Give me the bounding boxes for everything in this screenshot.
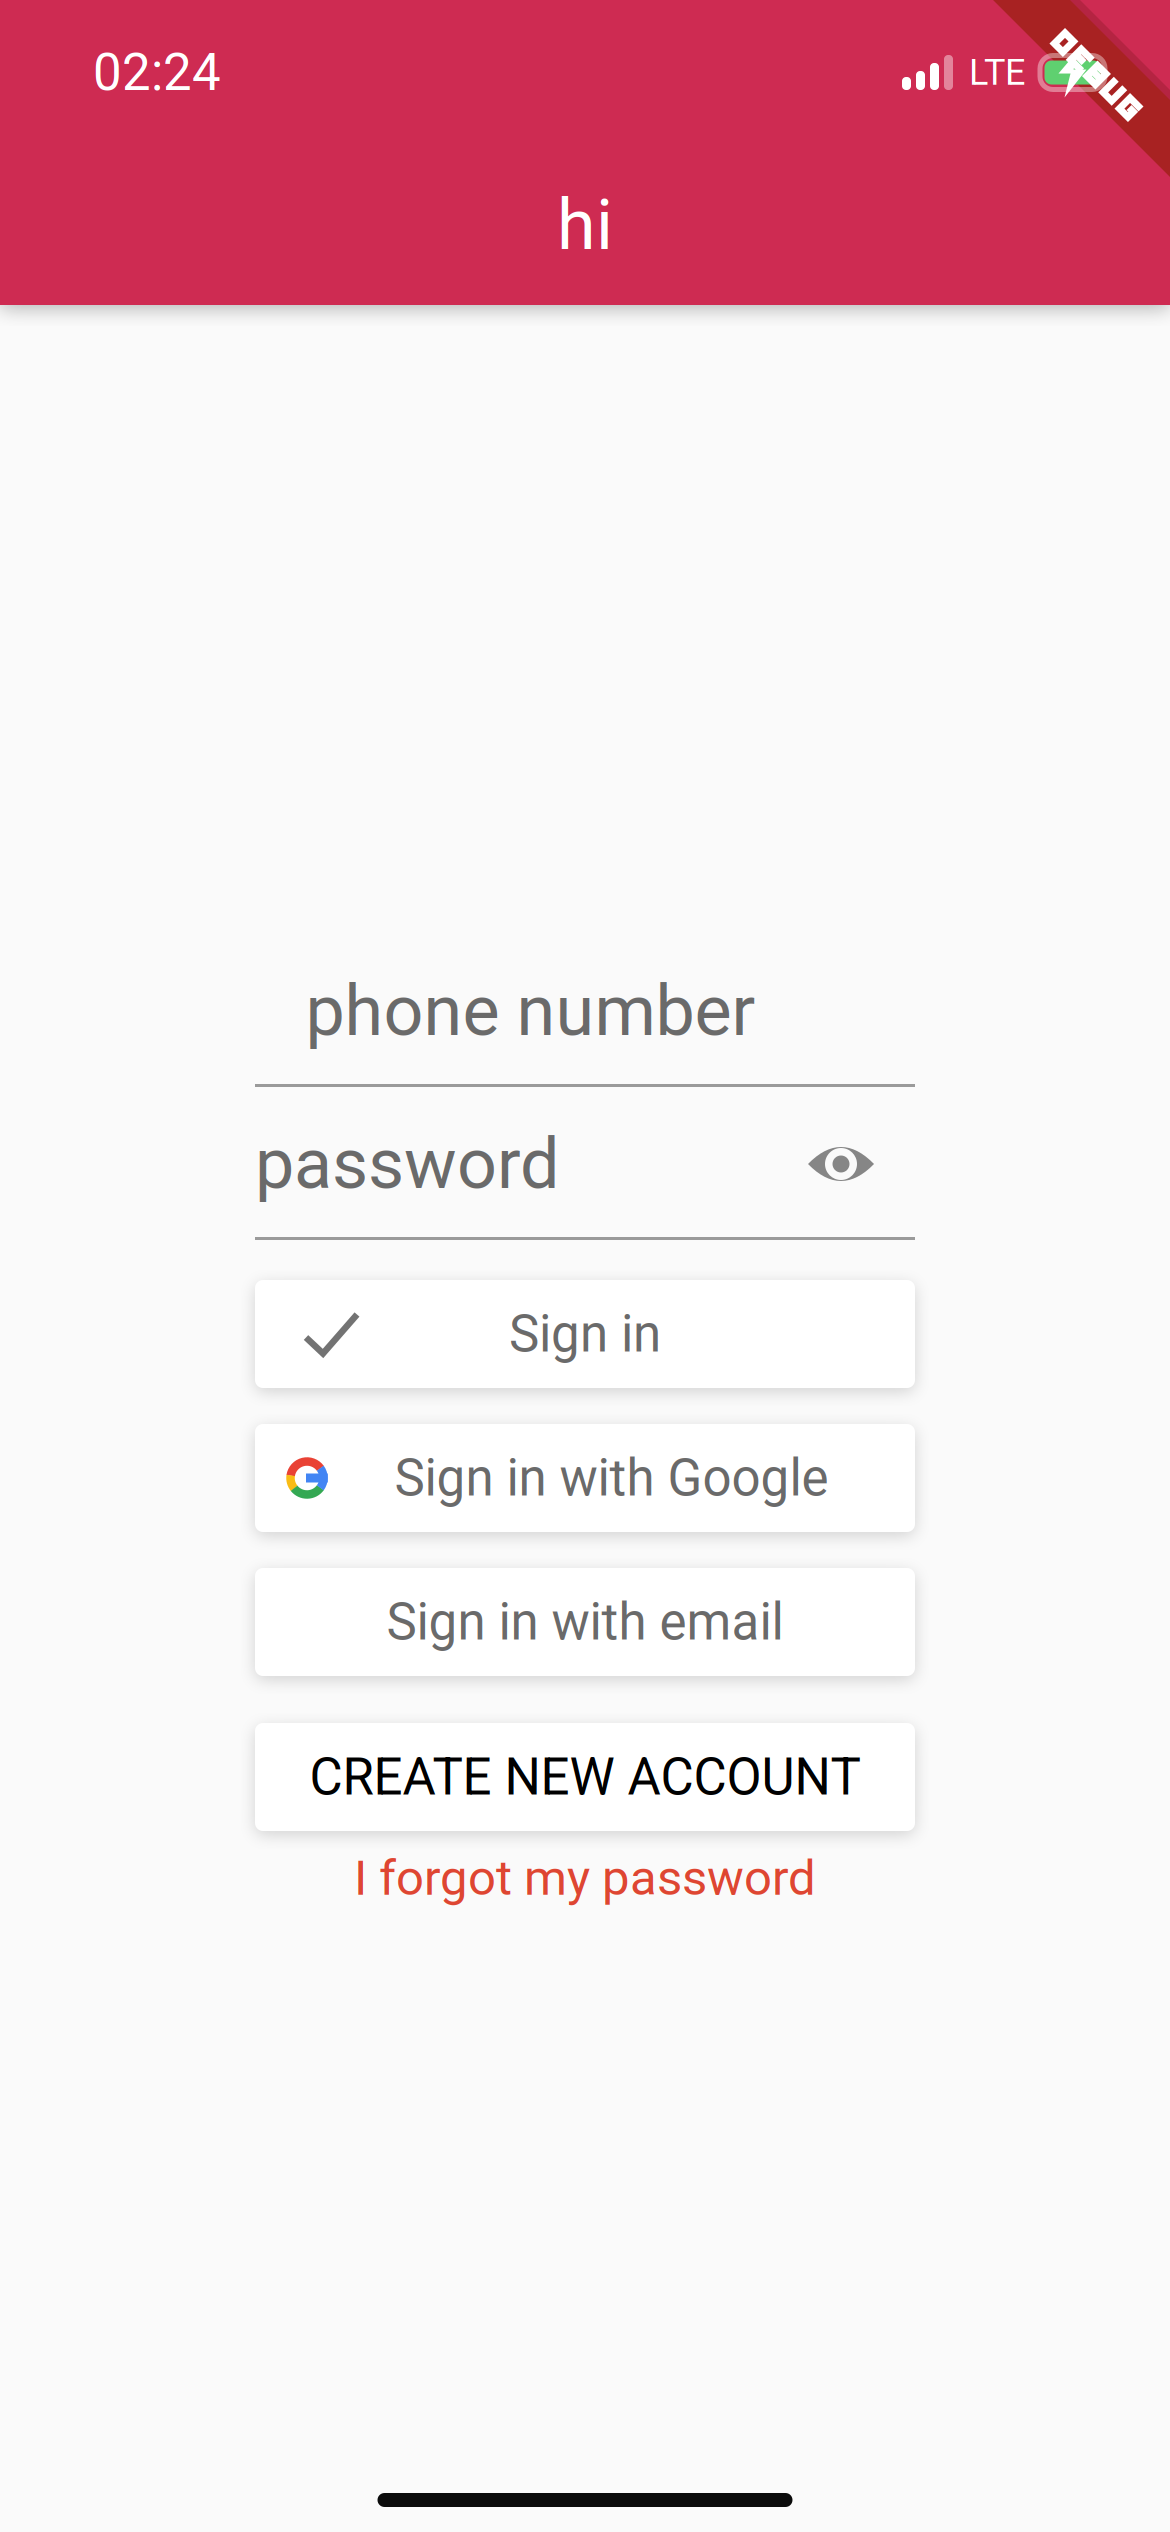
button[interactable]: Show password (806, 1136, 876, 1192)
staticText: Sign in with Google (394, 1448, 828, 1508)
button[interactable]: CREATE NEW ACCOUNT (255, 1723, 915, 1831)
button[interactable]: Sign in (255, 1280, 915, 1388)
staticText: phone number (305, 970, 755, 1052)
button[interactable]: Sign in with Google (255, 1424, 915, 1532)
button[interactable]: I forgot my password (255, 1831, 915, 1925)
staticText: Sign in with email (386, 1592, 783, 1652)
staticText: hi (557, 184, 613, 266)
staticText: I forgot my password (354, 1849, 816, 1907)
staticText: Sign in (509, 1304, 661, 1364)
staticText: 02:24 (93, 43, 221, 102)
staticText: CREATE NEW ACCOUNT (309, 1747, 860, 1807)
button[interactable]: Sign in with email (255, 1568, 915, 1676)
staticText: LTE (969, 51, 1025, 94)
staticText: password (255, 1123, 559, 1205)
